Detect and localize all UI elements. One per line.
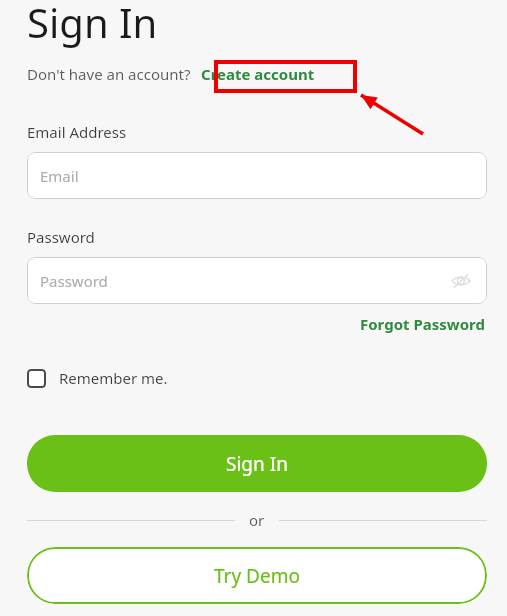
staticText: Remember me. (59, 368, 168, 388)
staticText: or (249, 510, 265, 530)
button[interactable]: Show password (448, 268, 474, 294)
staticText: Email (40, 166, 79, 186)
staticText: Forgot Password (360, 314, 485, 334)
staticText: Password (40, 271, 108, 291)
button[interactable]: Try Demo (27, 547, 487, 604)
staticText: Password (27, 227, 95, 247)
staticText: Sign In (27, 0, 158, 49)
button[interactable]: Forgot Password (358, 312, 487, 336)
staticText: Sign In (226, 451, 288, 477)
button[interactable]: Password (27, 257, 487, 304)
staticText: Try Demo (214, 563, 300, 589)
staticText: Don't have an account? (27, 64, 191, 84)
button[interactable]: Sign In (27, 435, 487, 492)
staticText: Create account (201, 64, 315, 84)
staticText: Email Address (27, 122, 127, 142)
button[interactable]: Email (27, 152, 487, 199)
button[interactable]: Remember me. (27, 364, 168, 392)
button[interactable]: Create account (199, 62, 317, 86)
